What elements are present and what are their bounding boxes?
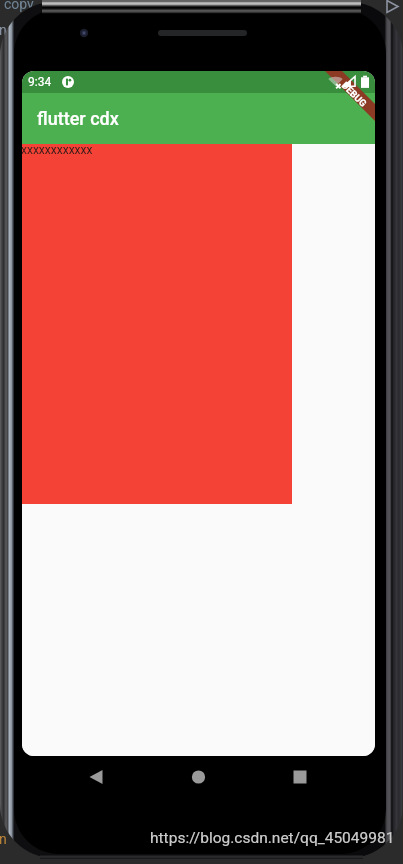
- button[interactable]: Home: [135, 756, 269, 798]
- staticText: 9:34: [28, 75, 52, 89]
- button[interactable]: Recent apps: [269, 756, 403, 798]
- button[interactable]: flutter cdx: [22, 93, 375, 144]
- button[interactable]: Back: [0, 756, 135, 798]
- staticText: https://blog.csdn.net/qq_45049981: [150, 829, 395, 847]
- staticText: copy: [4, 0, 34, 12]
- staticText: flutter cdx: [37, 108, 119, 129]
- staticText: n: [0, 831, 7, 847]
- staticText: n: [0, 22, 7, 38]
- staticText: DEBUG: [340, 80, 369, 109]
- staticText: xxxxxxxxxxxx: [22, 143, 93, 157]
